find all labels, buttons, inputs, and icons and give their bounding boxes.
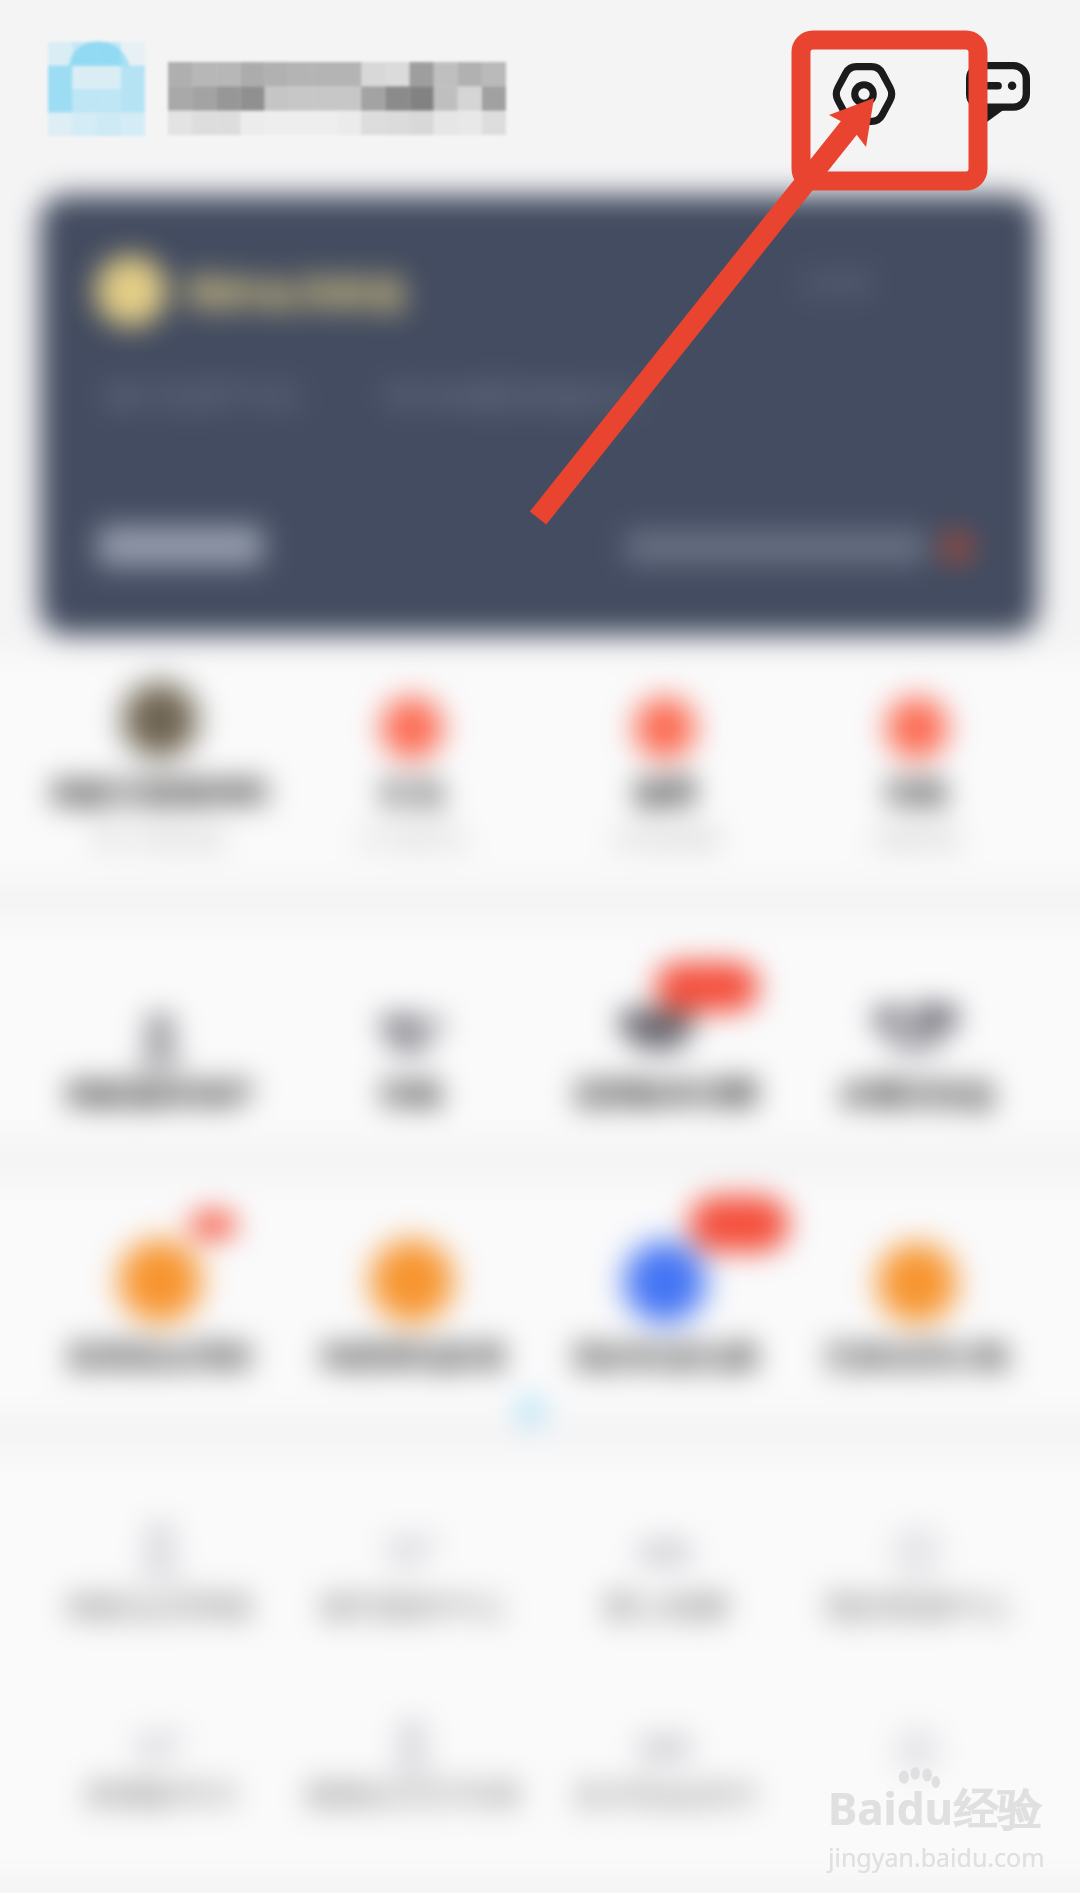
button[interactable]: 我的客服中心	[792, 1457, 1042, 1667]
staticText: 花呗账单消费	[572, 1075, 758, 1114]
staticText: 红包	[381, 774, 443, 813]
staticText: 缴费	[634, 774, 696, 813]
button[interactable]: 淘票票电影票	[287, 1208, 537, 1418]
button[interactable]: Messages	[948, 45, 1048, 145]
staticText: jingyan.baidu.com	[828, 1840, 1045, 1874]
staticText: 蚂蚁森林保护	[67, 1075, 253, 1114]
button[interactable]: 缴费	[540, 642, 790, 852]
staticText: 城市服务中心	[319, 1588, 505, 1627]
button[interactable]: 余额宝收益	[792, 946, 1042, 1156]
staticText: 蚂蚁会员等级	[67, 1588, 253, 1627]
staticText: 我的会员权益	[185, 270, 407, 317]
staticText: 我的客服中心	[824, 1588, 1010, 1627]
button[interactable]: 亲情账号卡	[35, 1652, 285, 1862]
button[interactable]: 蚂蚁会员等级	[35, 1457, 285, 1667]
staticText: 昨日余额宝收益(元)	[387, 375, 637, 415]
button[interactable]: 股票基金理财	[35, 1208, 285, 1418]
staticText: 滴滴出行打车券	[304, 1776, 521, 1815]
button[interactable]: 转账	[792, 642, 1042, 852]
button[interactable]: 我的会员权益	[40, 195, 1038, 635]
button[interactable]: 我的快递包裹	[540, 1208, 790, 1418]
staticText: 爱心捐赠	[603, 1588, 727, 1627]
button[interactable]: 滴滴出行打车券	[287, 1652, 537, 1862]
button[interactable]: 花呗账单消费	[540, 946, 790, 1156]
button[interactable]: 蚂蚁森林保护	[35, 946, 285, 1156]
button[interactable]: 蚂蚁庄园领饲料	[35, 642, 285, 852]
button[interactable]: 红包	[287, 642, 537, 852]
button[interactable]: 支付宝会员卡	[540, 1652, 790, 1862]
staticText: 我的快递包裹	[572, 1338, 758, 1377]
staticText: 余额宝收益	[840, 1075, 995, 1114]
staticText: 股票基金理财	[67, 1338, 253, 1377]
button[interactable]: Scan	[814, 44, 914, 144]
staticText: 蚂蚁庄园领饲料	[52, 774, 269, 813]
staticText: Baidu经验	[828, 1778, 1042, 1838]
button[interactable]	[792, 1652, 1042, 1862]
button[interactable]: 芝麻信用分数	[792, 1208, 1042, 1418]
staticText: 淘票票电影票	[319, 1338, 505, 1377]
staticText: 芝麻信用分数	[824, 1338, 1010, 1377]
staticText: 亲情账号卡	[83, 1776, 238, 1815]
staticText: 转账	[886, 774, 948, 813]
button[interactable]: Profile avatar	[48, 42, 145, 136]
staticText: 转账	[381, 1075, 443, 1114]
staticText: 水电煤缴费	[610, 826, 720, 854]
button[interactable]: 城市服务中心	[287, 1457, 537, 1667]
staticText: 支付宝会员卡	[572, 1776, 758, 1815]
button[interactable]: 爱心捐赠	[540, 1457, 790, 1667]
button[interactable]: 转账	[287, 946, 537, 1156]
